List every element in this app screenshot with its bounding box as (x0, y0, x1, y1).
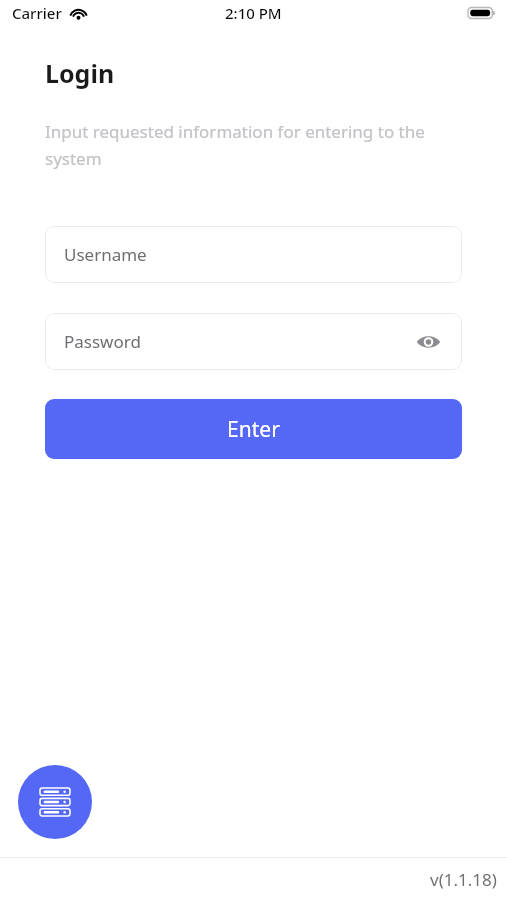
button[interactable]: Password (45, 313, 462, 370)
staticText: v(1.1.18) (430, 868, 497, 891)
staticText: Input requested information for entering… (45, 120, 462, 170)
staticText: Login (45, 56, 115, 90)
staticText: Username (64, 243, 147, 266)
staticText: Carrier (12, 3, 62, 23)
button[interactable]: Server settings (18, 765, 92, 839)
button[interactable]: Enter (45, 399, 462, 459)
staticText: Password (64, 330, 141, 353)
staticText: Enter (227, 415, 280, 444)
button[interactable]: Show password (411, 325, 445, 359)
staticText: 2:10 PM (225, 3, 282, 23)
button[interactable]: Username (45, 226, 462, 283)
